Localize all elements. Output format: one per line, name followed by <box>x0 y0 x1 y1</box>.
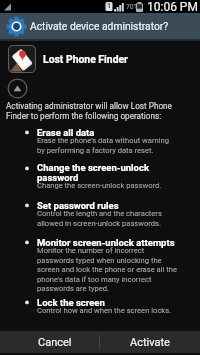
staticText: Control the length and the characters <box>37 209 162 218</box>
staticText: 70% <box>126 3 139 11</box>
staticText: 1 <box>107 2 112 10</box>
staticText: Lost Phone Finder <box>43 53 128 65</box>
staticText: Cancel <box>38 336 72 349</box>
staticText: Change the screen-unlock password. <box>37 181 162 190</box>
staticText: allowed in screen-unlock passwords. <box>37 219 161 228</box>
staticText: passwords are typed. <box>37 284 110 293</box>
staticText: Change the screen-unlock <box>37 162 149 173</box>
staticText: Monitor screen-unlock attempts <box>37 237 175 248</box>
staticText: Activating administrator will allow Lost… <box>6 101 172 121</box>
staticText: Erase all data <box>37 127 95 138</box>
staticText: Activate <box>130 336 170 349</box>
button[interactable] <box>7 78 28 99</box>
staticText: Monitor the number of incorrect <box>37 246 145 255</box>
staticText: 10:06 PM <box>147 0 198 13</box>
staticText: password <box>37 172 79 183</box>
staticText: Lock the screen <box>37 297 105 308</box>
staticText: Erase the phone's data without warning <box>37 136 169 145</box>
staticText: Activate device administrator? <box>30 20 169 32</box>
staticText: Set password rules <box>37 200 119 211</box>
staticText: passwords typed when unlocking the <box>37 256 162 265</box>
staticText: screen and lock the phone or erase all t… <box>37 265 177 274</box>
button[interactable]: Cancel <box>0 331 99 353</box>
staticText: by performing a factory data reset. <box>37 146 154 155</box>
button[interactable]: Activate <box>100 331 200 353</box>
staticText: Control how and when the screen locks. <box>37 306 172 315</box>
staticText: phone's data if too many incorrect <box>37 275 152 284</box>
